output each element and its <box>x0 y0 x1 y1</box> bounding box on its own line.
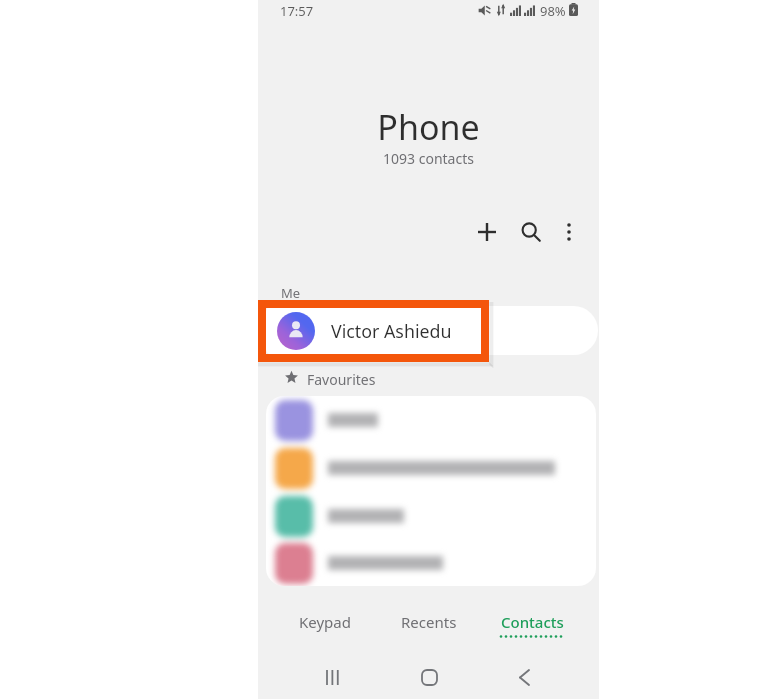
staticText: Favourites <box>307 370 376 389</box>
button[interactable]: More options <box>551 214 587 250</box>
button[interactable]: Home <box>407 655 451 699</box>
staticText: Recents <box>401 612 457 632</box>
button[interactable]: Recent apps <box>311 655 355 699</box>
button[interactable]: Add contact <box>469 214 505 250</box>
staticText: Phone <box>258 104 599 150</box>
button[interactable] <box>266 396 596 444</box>
staticText: Me <box>281 284 301 302</box>
button[interactable]: Back <box>502 655 546 699</box>
button[interactable]: Victor Ashiedu <box>266 306 598 355</box>
button[interactable] <box>266 540 596 586</box>
staticText: 1093 contacts <box>258 149 599 168</box>
button[interactable]: Recents <box>384 612 474 654</box>
staticText: Keypad <box>299 612 351 632</box>
staticText: Contacts <box>501 612 564 632</box>
button[interactable]: Contacts <box>487 612 577 654</box>
button[interactable]: Keypad <box>280 612 370 654</box>
staticText: 17:57 <box>280 2 314 20</box>
button[interactable] <box>266 492 596 540</box>
button[interactable] <box>266 444 596 492</box>
staticText: Victor Ashiedu <box>331 319 452 343</box>
button[interactable]: Search <box>513 214 549 250</box>
staticText: 98% <box>540 2 566 20</box>
